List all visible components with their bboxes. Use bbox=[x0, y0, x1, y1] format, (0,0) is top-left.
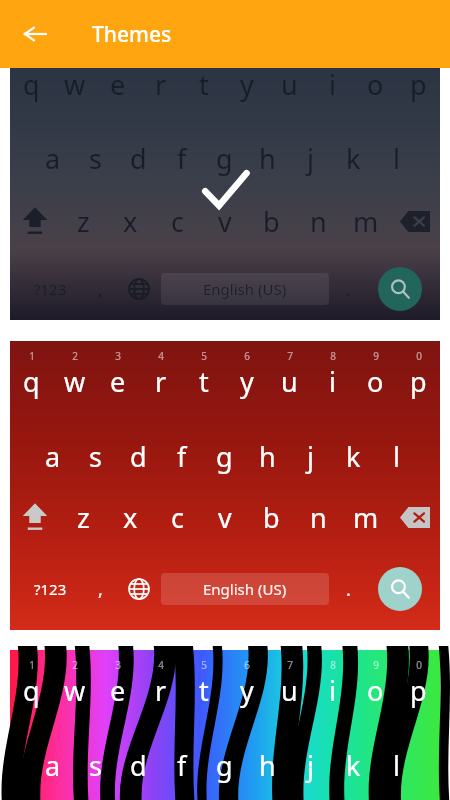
button[interactable]: Back bbox=[12, 11, 58, 57]
staticText: 7 bbox=[287, 658, 293, 672]
staticText: i bbox=[329, 66, 336, 103]
button[interactable]: q bbox=[10, 68, 440, 320]
staticText: k bbox=[346, 140, 361, 177]
staticText: e bbox=[110, 363, 126, 400]
staticText: f bbox=[177, 747, 187, 784]
staticText: k bbox=[346, 438, 361, 475]
staticText: o bbox=[367, 66, 384, 103]
staticText: n bbox=[310, 499, 327, 536]
staticText: s bbox=[89, 747, 102, 784]
staticText: 1 bbox=[29, 349, 35, 363]
staticText: e bbox=[110, 66, 126, 103]
staticText: 5 bbox=[201, 658, 207, 672]
staticText: , bbox=[98, 277, 103, 302]
staticText: w bbox=[64, 672, 86, 709]
staticText: h bbox=[259, 747, 276, 784]
staticText: w bbox=[64, 66, 86, 103]
staticText: f bbox=[177, 438, 187, 475]
staticText: English (US) bbox=[203, 579, 287, 599]
staticText: o bbox=[367, 363, 384, 400]
staticText: ?123 bbox=[34, 579, 67, 599]
staticText: j bbox=[307, 747, 314, 784]
staticText: 5 bbox=[201, 349, 207, 363]
staticText: 4 bbox=[158, 349, 164, 363]
staticText: a bbox=[45, 438, 61, 475]
staticText: r bbox=[155, 66, 167, 103]
staticText: i bbox=[329, 672, 336, 709]
staticText: x bbox=[123, 203, 138, 240]
staticText: 3 bbox=[115, 658, 121, 672]
staticText: 2 bbox=[72, 349, 78, 363]
staticText: 6 bbox=[244, 349, 250, 363]
staticText: 9 bbox=[373, 658, 379, 672]
staticText: ?123 bbox=[34, 279, 67, 299]
button[interactable]: 1 bbox=[10, 341, 440, 630]
staticText: 2 bbox=[72, 658, 78, 672]
staticText: g bbox=[216, 140, 233, 177]
staticText: n bbox=[310, 203, 327, 240]
staticText: 3 bbox=[115, 349, 121, 363]
staticText: c bbox=[171, 499, 184, 536]
staticText: q bbox=[23, 66, 40, 103]
staticText: r bbox=[155, 672, 167, 709]
staticText: y bbox=[240, 66, 254, 103]
staticText: 1 bbox=[29, 658, 35, 672]
staticText: , bbox=[98, 577, 103, 602]
staticText: p bbox=[410, 66, 427, 103]
staticText: m bbox=[353, 499, 379, 536]
staticText: z bbox=[77, 499, 90, 536]
staticText: m bbox=[353, 203, 379, 240]
staticText: l bbox=[393, 747, 400, 784]
staticText: q bbox=[23, 672, 40, 709]
staticText: d bbox=[130, 747, 147, 784]
staticText: a bbox=[45, 140, 61, 177]
staticText: 8 bbox=[330, 658, 336, 672]
staticText: y bbox=[240, 672, 254, 709]
staticText: z bbox=[77, 203, 90, 240]
staticText: b bbox=[263, 203, 280, 240]
staticText: 6 bbox=[244, 658, 250, 672]
staticText: 0 bbox=[416, 349, 422, 363]
staticText: l bbox=[393, 140, 400, 177]
staticText: u bbox=[281, 672, 298, 709]
staticText: h bbox=[259, 140, 276, 177]
staticText: e bbox=[110, 672, 126, 709]
staticText: s bbox=[89, 140, 102, 177]
staticText: k bbox=[346, 747, 361, 784]
staticText: p bbox=[410, 672, 427, 709]
staticText: o bbox=[367, 672, 384, 709]
button[interactable]: 1 bbox=[10, 650, 440, 800]
staticText: j bbox=[307, 438, 314, 475]
staticText: 0 bbox=[416, 658, 422, 672]
staticText: x bbox=[123, 499, 138, 536]
staticText: d bbox=[130, 140, 147, 177]
staticText: u bbox=[281, 66, 298, 103]
staticText: t bbox=[199, 363, 209, 400]
staticText: v bbox=[218, 499, 232, 536]
staticText: 9 bbox=[373, 349, 379, 363]
staticText: . bbox=[346, 277, 351, 302]
staticText: h bbox=[259, 438, 276, 475]
staticText: English (US) bbox=[203, 279, 287, 299]
staticText: t bbox=[199, 66, 209, 103]
staticText: q bbox=[23, 363, 40, 400]
staticText: g bbox=[216, 438, 233, 475]
staticText: g bbox=[216, 747, 233, 784]
staticText: 8 bbox=[330, 349, 336, 363]
staticText: j bbox=[307, 140, 314, 177]
staticText: b bbox=[263, 499, 280, 536]
staticText: i bbox=[329, 363, 336, 400]
staticText: c bbox=[171, 203, 184, 240]
staticText: . bbox=[346, 577, 351, 602]
staticText: a bbox=[45, 747, 61, 784]
staticText: p bbox=[410, 363, 427, 400]
staticText: d bbox=[130, 438, 147, 475]
staticText: y bbox=[240, 363, 254, 400]
staticText: w bbox=[64, 363, 86, 400]
staticText: Themes bbox=[92, 20, 172, 49]
staticText: r bbox=[155, 363, 167, 400]
staticText: t bbox=[199, 672, 209, 709]
staticText: u bbox=[281, 363, 298, 400]
staticText: 7 bbox=[287, 349, 293, 363]
staticText: l bbox=[393, 438, 400, 475]
